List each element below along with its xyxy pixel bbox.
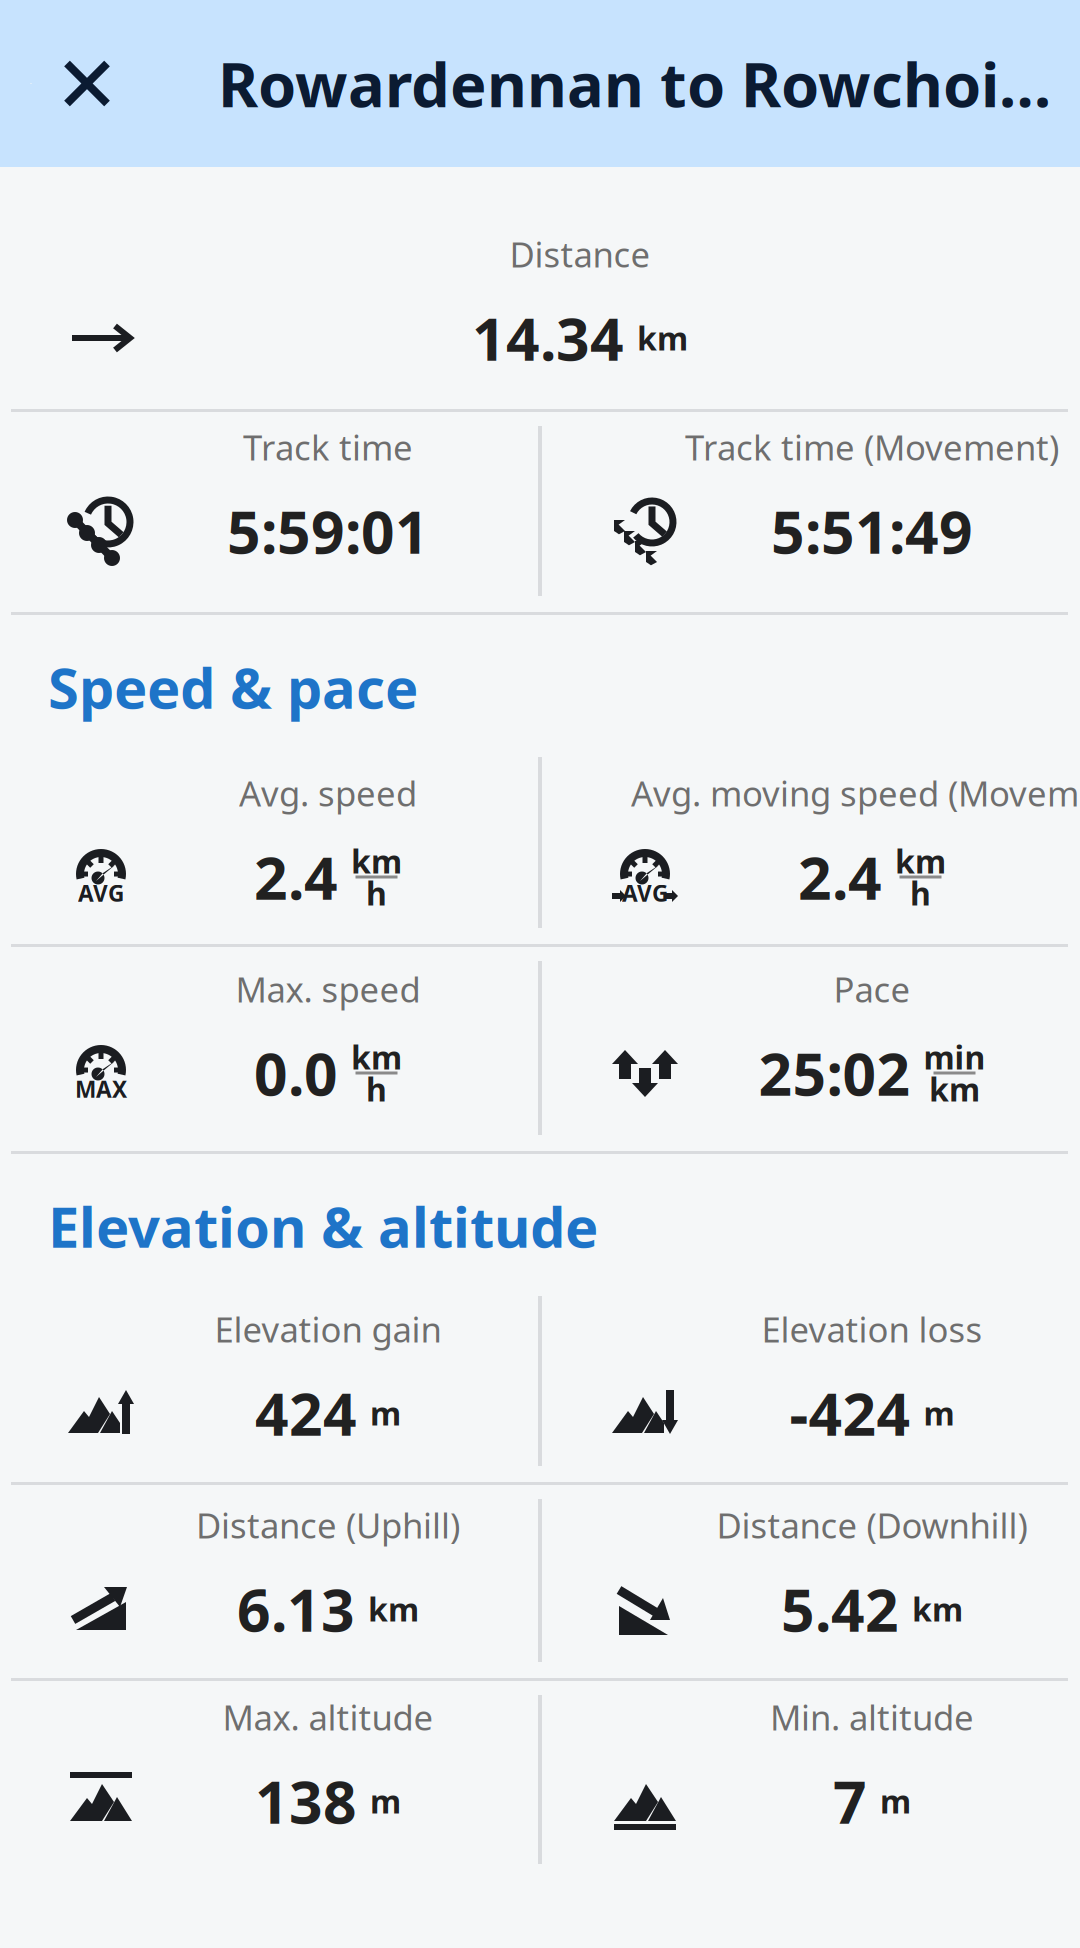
staticText: km (368, 1588, 419, 1630)
staticText: AVG (622, 878, 668, 908)
staticText: km (895, 840, 946, 882)
staticText: 6.13 (237, 1570, 355, 1648)
staticText: Elevation loss (761, 1306, 982, 1352)
staticText: min (923, 1036, 985, 1078)
staticText: Rowardennan to Rowchoi… (218, 43, 1051, 124)
staticText: Elevation gain (214, 1306, 441, 1352)
staticText: 424 (255, 1374, 357, 1452)
staticText: 5:51:49 (771, 492, 973, 570)
staticText: Min. altitude (770, 1694, 974, 1740)
staticText: Elevation & altitude (48, 1189, 598, 1263)
staticText: 138 (255, 1762, 357, 1840)
staticText: h (910, 872, 931, 914)
staticText: m (923, 1392, 954, 1434)
staticText: Avg. moving speed (Movem. (631, 770, 1080, 816)
staticText: Pace (833, 966, 910, 1012)
staticText: MAX (75, 1074, 127, 1104)
staticText: 2.4 (798, 838, 882, 916)
staticText: 5.42 (781, 1570, 899, 1648)
staticText: 0.0 (254, 1034, 338, 1112)
staticText: Distance (Uphill) (196, 1502, 460, 1548)
staticText: km (912, 1588, 963, 1630)
staticText: -424 (789, 1374, 910, 1452)
staticText: km (929, 1068, 980, 1110)
staticText: m (370, 1392, 401, 1434)
staticText: m (880, 1780, 911, 1822)
staticText: h (366, 872, 387, 914)
staticText: 25:02 (758, 1034, 910, 1112)
staticText: Distance (509, 231, 650, 277)
staticText: Distance (Downhill) (716, 1502, 1027, 1548)
staticText: 2.4 (254, 838, 338, 916)
staticText: 7 (833, 1762, 867, 1840)
staticText: AVG (78, 878, 124, 908)
staticText: km (351, 840, 402, 882)
staticText: Avg. speed (239, 770, 417, 816)
staticText: h (366, 1068, 387, 1110)
staticText: 14.34 (472, 299, 624, 377)
staticText: km (351, 1036, 402, 1078)
staticText: Max. altitude (222, 1694, 433, 1740)
staticText: km (637, 317, 688, 359)
staticText: m (370, 1780, 401, 1822)
button[interactable]: Close (0, 0, 218, 167)
staticText: 5:59:01 (227, 492, 429, 570)
staticText: Track time (Movement) (685, 424, 1059, 470)
staticText: Track time (243, 424, 413, 470)
staticText: Max. speed (235, 966, 420, 1012)
staticText: Speed & pace (48, 650, 418, 724)
